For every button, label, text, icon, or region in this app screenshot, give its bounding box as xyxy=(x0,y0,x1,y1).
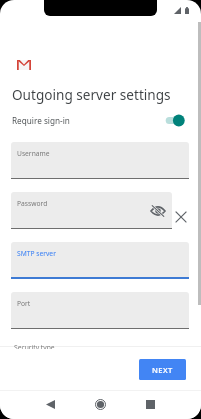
staticText: Password xyxy=(17,199,48,208)
staticText: Require sign-in xyxy=(12,115,70,126)
button[interactable]: Port xyxy=(11,292,189,329)
button[interactable]: Recent apps xyxy=(136,390,164,418)
button[interactable]: Back xyxy=(36,390,64,418)
button[interactable]: Home xyxy=(86,390,114,418)
button[interactable]: Username xyxy=(11,142,189,179)
staticText: Username xyxy=(17,149,50,158)
staticText: SMTP server xyxy=(17,249,56,258)
button[interactable]: NEXT xyxy=(139,359,186,380)
staticText: Security type xyxy=(14,343,55,352)
button[interactable]: SMTP server xyxy=(11,242,189,279)
button[interactable]: Require sign-in xyxy=(0,112,201,129)
staticText: Outgoing server settings xyxy=(12,85,171,104)
button[interactable]: Require sign-in xyxy=(165,114,185,127)
staticText: Port xyxy=(17,299,31,308)
staticText: NEXT xyxy=(152,365,173,375)
button[interactable]: Password xyxy=(11,192,172,229)
button[interactable]: Show password xyxy=(150,203,166,219)
button[interactable]: Clear password xyxy=(173,209,189,225)
